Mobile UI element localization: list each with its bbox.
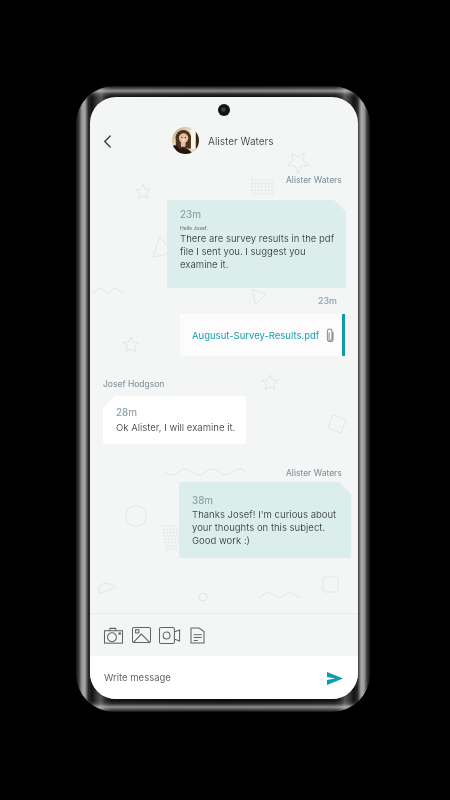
staticText: Alister Waters <box>286 175 342 185</box>
button[interactable]: Camera <box>99 620 127 650</box>
staticText: Alister Waters <box>286 468 342 478</box>
staticText: 28m <box>116 406 138 418</box>
button[interactable]: Document <box>183 620 211 650</box>
button[interactable]: Back <box>94 128 120 154</box>
staticText: Alister Waters <box>208 135 274 147</box>
button[interactable]: Send <box>324 667 346 689</box>
staticText: Thanks Josef! I'm curious about your tho… <box>192 509 341 546</box>
button[interactable]: Augusut-Survey-Results.pdf <box>180 314 345 356</box>
staticText: Ok Alister, I will examine it. <box>116 422 236 433</box>
staticText: 23m <box>318 295 337 306</box>
button[interactable]: Video <box>155 620 183 650</box>
button[interactable]: 38m <box>179 482 351 558</box>
button[interactable]: Photo <box>127 620 155 650</box>
button[interactable]: 23m <box>167 200 346 288</box>
staticText: There are survey results in the pdf file… <box>180 233 336 270</box>
staticText: Josef Hodgson <box>103 379 165 389</box>
staticText: 23m <box>180 208 202 220</box>
staticText: Write message <box>104 672 171 683</box>
button[interactable]: 28m <box>103 396 246 444</box>
staticText: 38m <box>192 494 214 506</box>
staticText: Augusut-Survey-Results.pdf <box>192 330 320 341</box>
button[interactable]: Alister Waters <box>172 127 274 154</box>
staticText: Hello Josef. <box>180 225 208 231</box>
